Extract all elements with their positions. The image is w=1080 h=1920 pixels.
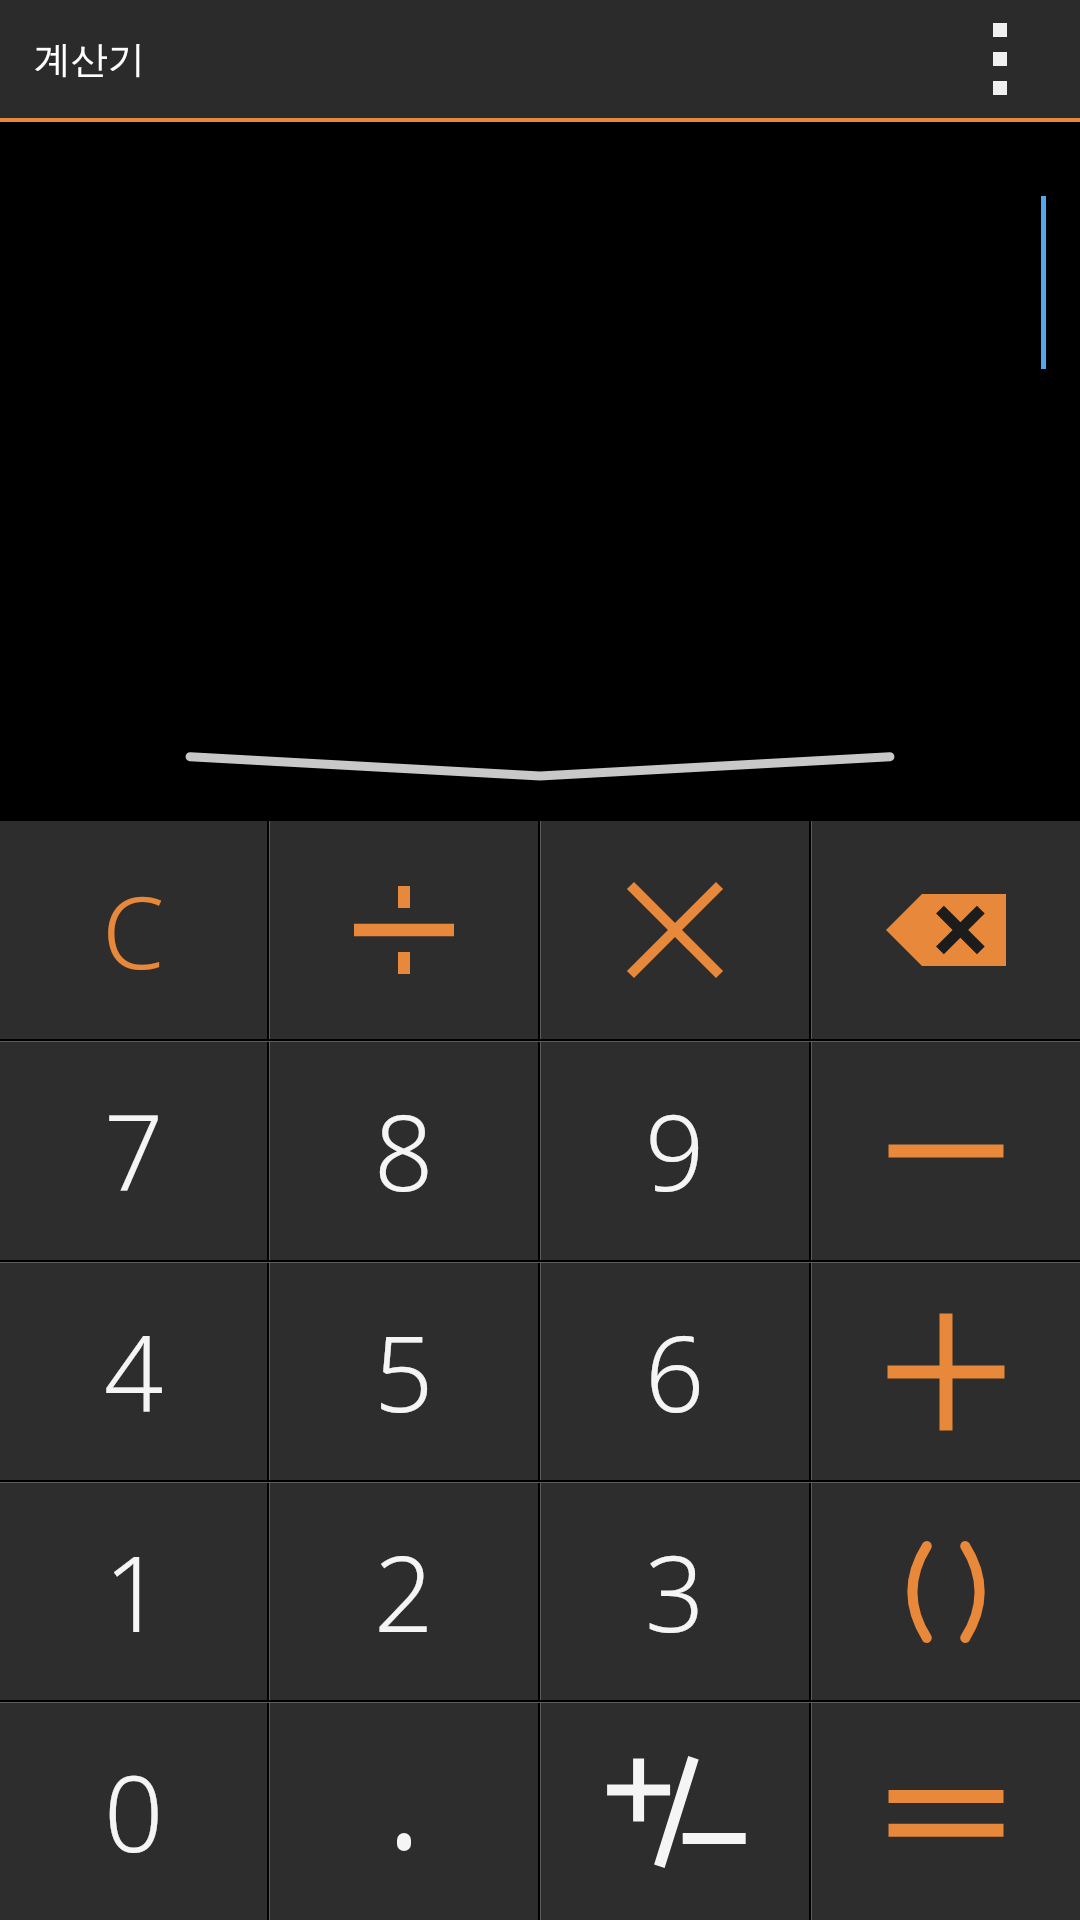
button[interactable]: 1 (0, 1483, 267, 1700)
button[interactable]: Divide (270, 821, 538, 1039)
button[interactable]: 0 (0, 1703, 267, 1920)
button[interactable]: 7 (0, 1042, 267, 1260)
button[interactable]: Clear (0, 821, 267, 1039)
staticText: C (102, 862, 165, 998)
staticText: 2 (374, 1521, 434, 1663)
staticText: 8 (374, 1080, 434, 1222)
button[interactable]: 5 (270, 1263, 538, 1480)
button[interactable]: More options (946, 5, 1054, 113)
button[interactable]: Plus minus sign (541, 1703, 809, 1920)
button[interactable]: Equals (812, 1703, 1080, 1920)
button[interactable]: 4 (0, 1263, 267, 1480)
staticText: 3 (645, 1521, 705, 1663)
staticText: 5 (374, 1301, 434, 1443)
button[interactable]: 9 (541, 1042, 809, 1260)
button[interactable]: Backspace (812, 821, 1080, 1039)
button[interactable]: Plus (812, 1263, 1080, 1480)
staticText: 계산기 (34, 36, 145, 83)
button[interactable]: 3 (541, 1483, 809, 1700)
button[interactable]: 8 (270, 1042, 538, 1260)
button[interactable]: 2 (270, 1483, 538, 1700)
button[interactable]: Multiply (541, 821, 809, 1039)
button[interactable]: Parentheses (812, 1483, 1080, 1700)
staticText: 9 (645, 1080, 705, 1222)
staticText: 4 (104, 1301, 164, 1443)
button[interactable]: Minus (812, 1042, 1080, 1260)
staticText: 1 (104, 1521, 164, 1663)
button[interactable] (0, 122, 1080, 821)
staticText: 7 (104, 1080, 164, 1222)
staticText: 0 (104, 1741, 164, 1883)
button[interactable]: 6 (541, 1263, 809, 1480)
staticText: 6 (645, 1301, 705, 1443)
button[interactable]: Decimal point (270, 1703, 538, 1920)
